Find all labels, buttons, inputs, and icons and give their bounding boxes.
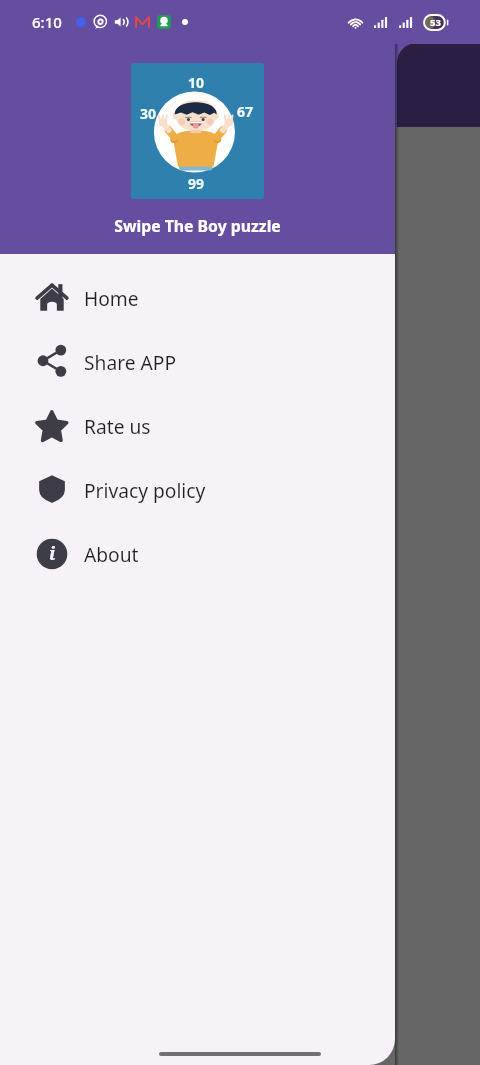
staticText: 30 — [140, 104, 157, 123]
button[interactable]: Privacy policy — [0, 458, 395, 522]
staticText: Privacy policy — [84, 477, 206, 503]
staticText: Swipe The Boy puzzle — [114, 215, 281, 237]
button[interactable]: i — [0, 522, 395, 586]
button[interactable]: Share APP — [0, 330, 395, 394]
staticText: 99 — [188, 174, 205, 193]
staticText: Rate us — [84, 413, 151, 439]
staticText: 10 — [188, 73, 205, 92]
staticText: Share APP — [84, 349, 176, 375]
button[interactable]: Home — [0, 266, 395, 330]
staticText: 53 — [430, 16, 441, 29]
staticText: i — [49, 541, 56, 566]
staticText: 6:10 — [32, 12, 62, 32]
staticText: 67 — [237, 102, 254, 121]
button[interactable]: Swipe The Boy puzzle app icon — [131, 63, 264, 199]
button[interactable]: Rate us — [0, 394, 395, 458]
staticText: About — [84, 541, 139, 567]
staticText: Home — [84, 285, 139, 311]
